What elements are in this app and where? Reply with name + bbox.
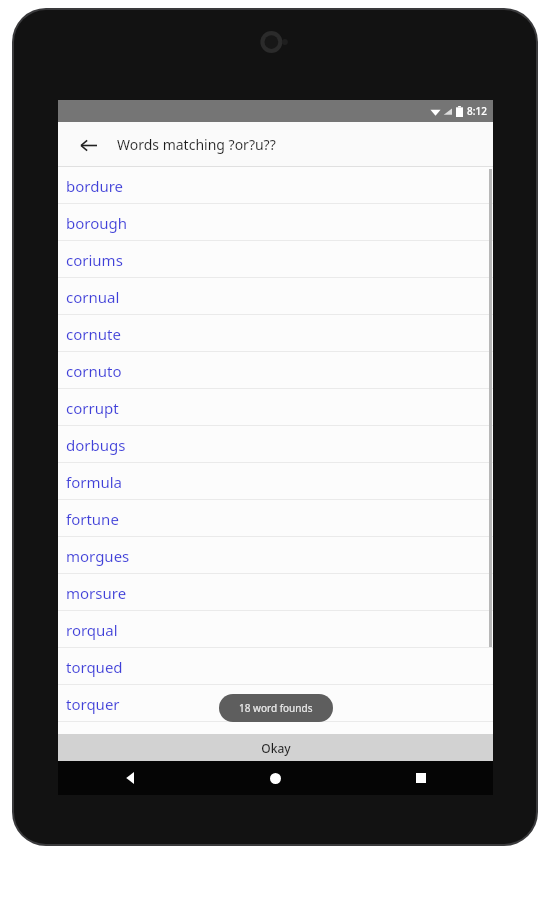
- staticText: Okay: [261, 740, 291, 756]
- button[interactable]: coriums: [58, 241, 493, 278]
- button[interactable]: cornute: [58, 315, 493, 352]
- staticText: morsure: [66, 583, 127, 603]
- staticText: torquer: [66, 694, 120, 714]
- staticText: cornute: [66, 324, 121, 344]
- button[interactable]: Okay: [58, 734, 493, 761]
- button[interactable]: torquer: [58, 685, 493, 722]
- button[interactable]: cornuto: [58, 352, 493, 389]
- staticText: torqued: [66, 657, 123, 677]
- button[interactable]: Recent apps: [348, 761, 493, 795]
- staticText: bordure: [66, 176, 124, 196]
- staticText: corrupt: [66, 398, 119, 418]
- staticText: 8:12: [467, 104, 487, 118]
- button[interactable]: Back: [72, 129, 104, 161]
- button[interactable]: Home: [203, 761, 348, 795]
- button[interactable]: torqued: [58, 648, 493, 685]
- button[interactable]: Back: [58, 761, 203, 795]
- staticText: dorbugs: [66, 435, 126, 455]
- button[interactable]: corrupt: [58, 389, 493, 426]
- staticText: coriums: [66, 250, 123, 270]
- button[interactable]: bordure: [58, 167, 493, 204]
- staticText: cornual: [66, 287, 120, 307]
- staticText: fortune: [66, 509, 119, 529]
- button[interactable]: morsure: [58, 574, 493, 611]
- button[interactable]: borough: [58, 204, 493, 241]
- staticText: formula: [66, 472, 123, 492]
- staticText: borough: [66, 213, 128, 233]
- staticText: cornuto: [66, 361, 122, 381]
- button[interactable]: dorbugs: [58, 426, 493, 463]
- staticText: 18 word founds: [239, 701, 313, 715]
- button[interactable]: cornual: [58, 278, 493, 315]
- button[interactable]: fortune: [58, 500, 493, 537]
- staticText: morgues: [66, 546, 130, 566]
- button[interactable]: formula: [58, 463, 493, 500]
- staticText: rorqual: [66, 620, 118, 640]
- staticText: Words matching ?or?u??: [117, 135, 276, 154]
- button[interactable]: morgues: [58, 537, 493, 574]
- button[interactable]: rorqual: [58, 611, 493, 648]
